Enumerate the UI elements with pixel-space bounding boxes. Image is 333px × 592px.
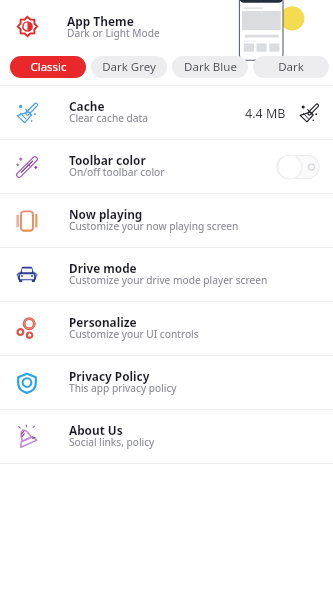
staticText: Clear cache data (69, 111, 148, 125)
button[interactable]: Drive mode (0, 248, 333, 301)
button[interactable]: Now playing (0, 194, 333, 247)
staticText: Customize your UI controls (69, 327, 199, 341)
staticText: Drive mode (69, 260, 137, 276)
staticText: Now playing (69, 206, 143, 222)
button[interactable]: Toolbar color (0, 140, 333, 193)
button[interactable]: Dark (253, 56, 329, 78)
button[interactable]: Classic (10, 56, 86, 78)
staticText: Personalize (69, 314, 137, 330)
staticText: Classic (30, 59, 67, 75)
button[interactable]: Privacy Policy (0, 356, 333, 409)
staticText: On/off toolbar color (69, 165, 165, 179)
staticText: Social links, policy (69, 435, 155, 449)
button[interactable]: Cache (0, 86, 333, 139)
staticText: 4.4 MB (245, 105, 286, 122)
staticText: Customize your now playing screen (69, 219, 239, 233)
staticText: This app privacy policy (69, 381, 177, 395)
staticText: Toolbar color (69, 152, 146, 168)
staticText: Dark Grey (102, 59, 156, 75)
button[interactable]: Dark Blue (172, 56, 248, 78)
button[interactable]: Toggle toolbar color (277, 154, 319, 180)
button[interactable]: About Us (0, 410, 333, 463)
staticText: About Us (69, 422, 123, 438)
staticText: Dark (278, 59, 304, 75)
button[interactable]: Dark Grey (91, 56, 167, 78)
staticText: Dark or Light Mode (67, 26, 160, 40)
staticText: Privacy Policy (69, 368, 150, 384)
button[interactable]: Personalize (0, 302, 333, 355)
staticText: Cache (69, 98, 105, 114)
staticText: App Theme (67, 13, 134, 29)
staticText: Customize your drive mode player screen (69, 273, 268, 287)
staticText: Dark Blue (184, 59, 237, 75)
